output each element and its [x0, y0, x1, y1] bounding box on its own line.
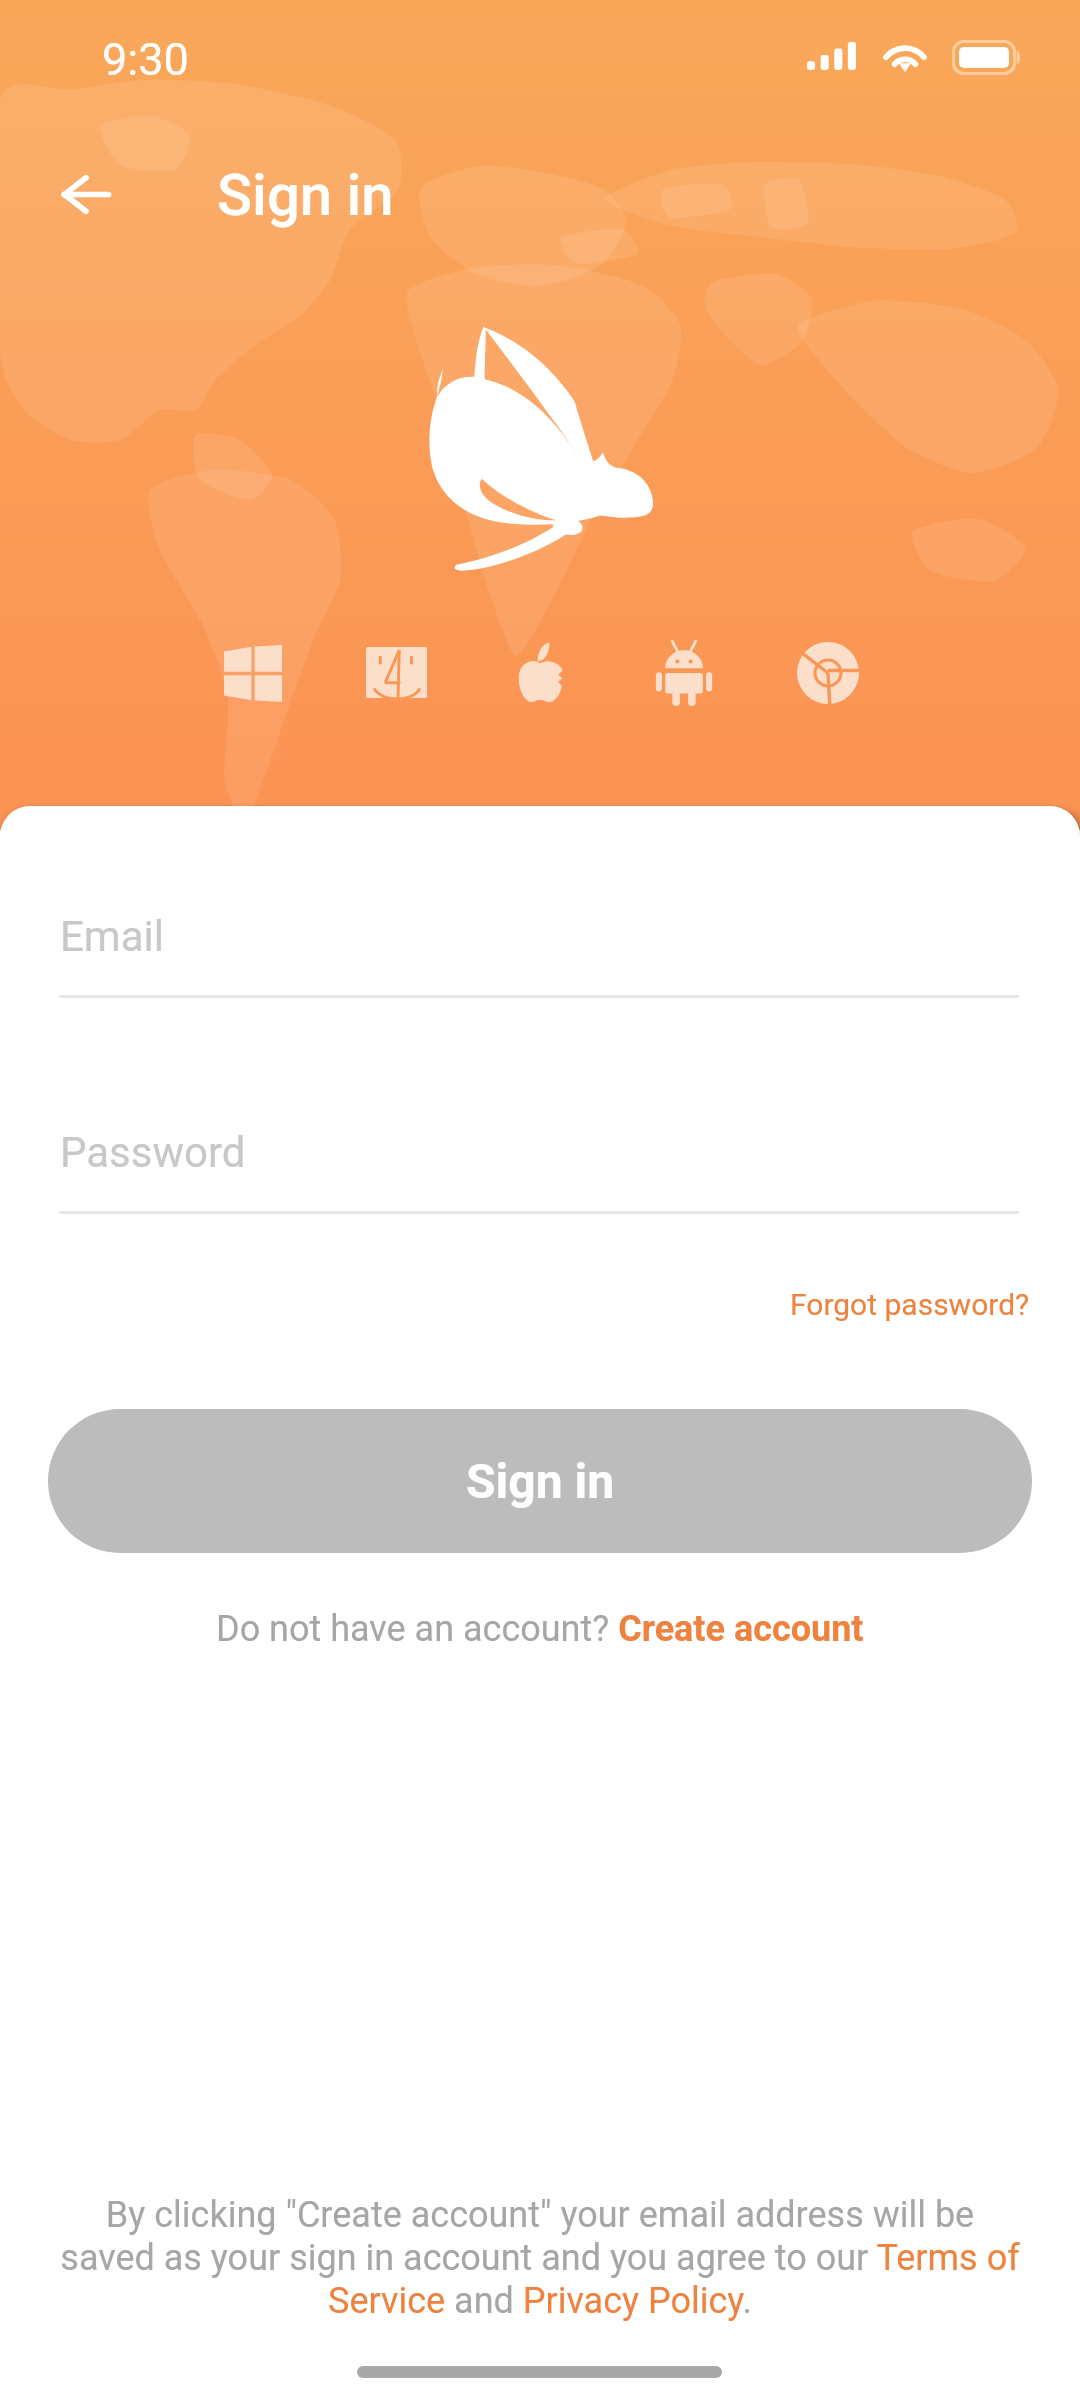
staticText: Sign in [217, 161, 394, 229]
staticText: Forgot password? [790, 1287, 1030, 1322]
staticText: Do not have an account? Create account [216, 1608, 864, 1650]
button[interactable]: Forgot password? [780, 1277, 1040, 1332]
staticText: Sign in [466, 1453, 615, 1509]
staticText: Password [60, 1128, 246, 1177]
button[interactable]: Back [22, 130, 150, 258]
staticText: 9:30 [102, 33, 189, 86]
button[interactable]: Do not have an account? Create account [208, 1600, 872, 1658]
staticText: Email [60, 912, 164, 961]
staticText: By clicking "Create account" your email … [58, 2194, 1022, 2322]
button[interactable]: Sign in [48, 1409, 1032, 1553]
